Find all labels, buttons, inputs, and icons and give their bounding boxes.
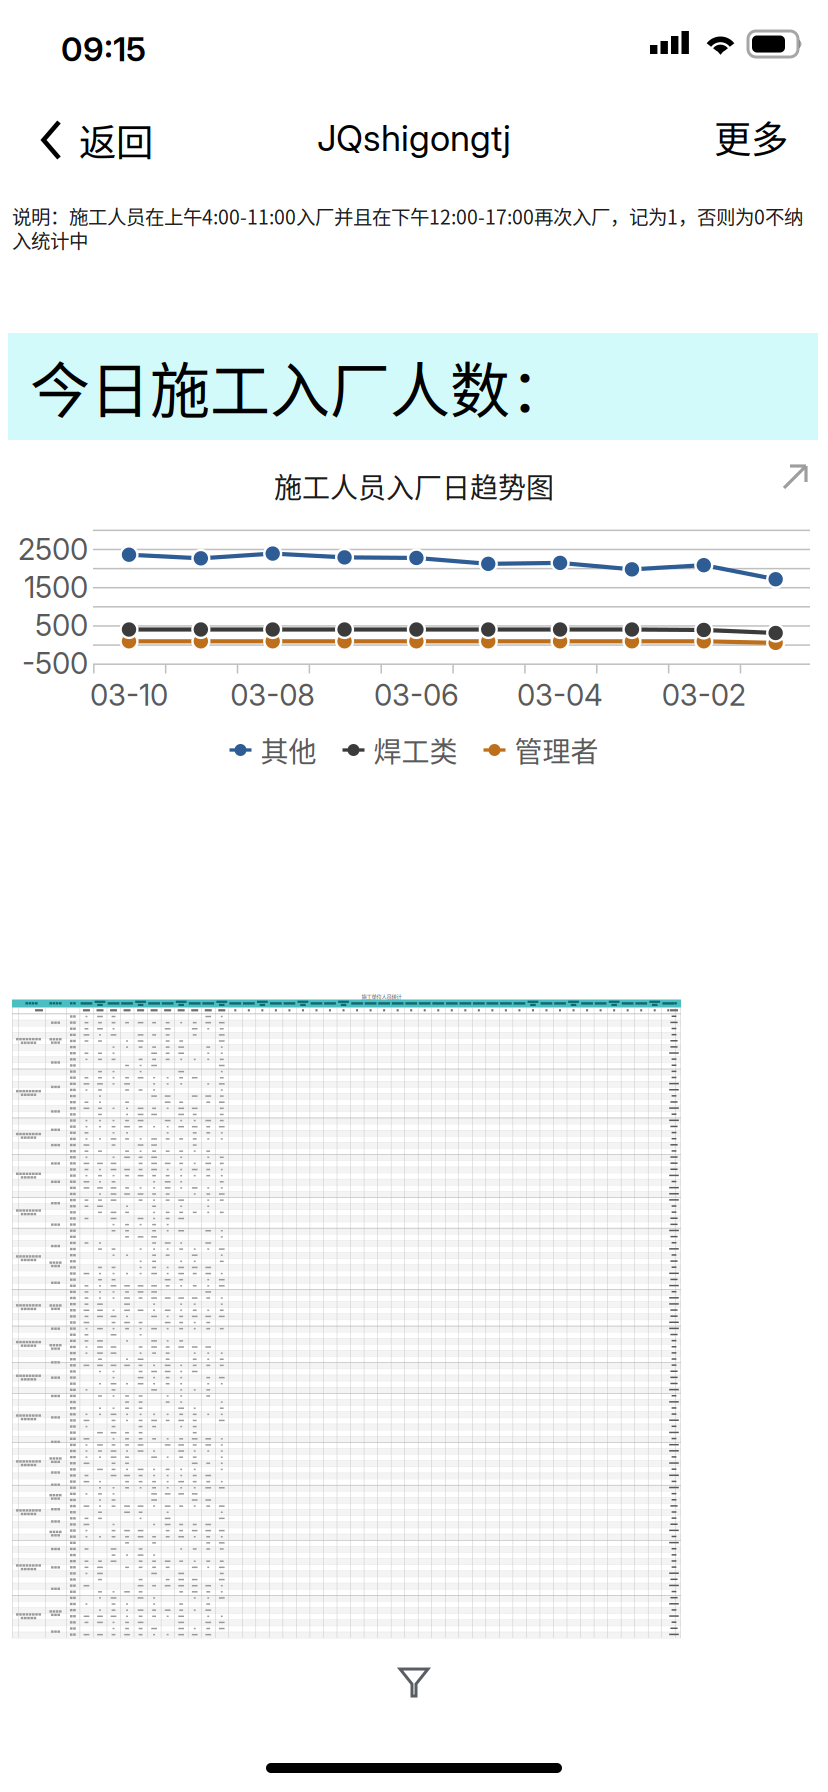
staticText: 施工单位人员统计 xyxy=(361,993,401,1001)
staticText: -500 xyxy=(22,646,88,681)
button[interactable]: Expand chart xyxy=(778,460,814,496)
staticText: 03-06 xyxy=(374,677,459,713)
staticText: 今日施工入厂人数： xyxy=(30,343,570,430)
staticText: 2500 xyxy=(18,532,88,567)
staticText: 管理者 xyxy=(514,730,598,770)
button[interactable]: 更多 xyxy=(628,101,788,173)
staticText: 1500 xyxy=(24,570,88,605)
staticText: 03-08 xyxy=(230,677,315,713)
staticText: 03-04 xyxy=(517,677,603,713)
staticText: 其他 xyxy=(260,730,316,770)
staticText: 09:15 xyxy=(61,29,146,69)
staticText: 500 xyxy=(35,608,88,643)
staticText: 焊工类 xyxy=(373,730,457,770)
staticText: 03-02 xyxy=(662,677,746,713)
staticText: JQshigongtj xyxy=(317,116,511,160)
staticText: 入统计中 xyxy=(12,226,88,254)
staticText: 03-10 xyxy=(90,677,168,713)
staticText: 更多 xyxy=(714,110,788,164)
staticText: 施工人员入厂日趋势图 xyxy=(274,466,554,506)
staticText: 说明：施工人员在上午4:00-11:00入厂并且在下午12:00-17:00再次… xyxy=(12,202,803,230)
button[interactable]: 返回 xyxy=(39,104,239,176)
button[interactable]: Filter xyxy=(385,1651,443,1713)
staticText: 返回 xyxy=(79,113,153,167)
